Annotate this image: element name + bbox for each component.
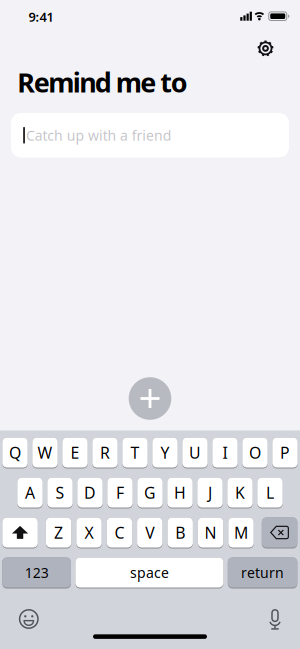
button[interactable]: Add reminder — [129, 377, 171, 420]
button[interactable]: K — [227, 477, 253, 508]
button[interactable]: S — [47, 477, 73, 508]
staticText: R — [100, 442, 110, 463]
button[interactable]: N — [198, 517, 223, 548]
staticText: U — [189, 442, 201, 463]
staticText: Z — [54, 522, 63, 543]
button[interactable]: X — [76, 517, 102, 548]
staticText: O — [249, 442, 261, 463]
button[interactable]: Dictation — [255, 601, 295, 637]
button[interactable]: T — [122, 437, 148, 468]
staticText: T — [130, 442, 139, 463]
staticText: 9:41 — [28, 8, 53, 25]
staticText: A — [25, 482, 35, 503]
button[interactable]: C — [107, 517, 132, 548]
button[interactable]: Settings — [252, 35, 278, 61]
staticText: Remind me to — [17, 64, 188, 100]
staticText: E — [70, 442, 79, 463]
button[interactable]: D — [77, 477, 103, 508]
button[interactable]: U — [182, 437, 208, 468]
button[interactable]: R — [92, 437, 118, 468]
button[interactable]: Delete — [262, 517, 297, 548]
button[interactable]: I — [212, 437, 238, 468]
staticText: J — [208, 482, 212, 503]
staticText: K — [235, 482, 245, 503]
staticText: Catch up with a friend — [26, 126, 172, 145]
button[interactable]: space — [75, 557, 223, 588]
staticText: D — [84, 482, 96, 503]
staticText: F — [116, 482, 124, 503]
button[interactable]: Emoji — [9, 601, 49, 637]
staticText: 123 — [25, 563, 49, 582]
button[interactable]: V — [137, 517, 162, 548]
button[interactable]: Q — [2, 437, 28, 468]
staticText: C — [114, 522, 124, 543]
button[interactable]: 123 — [2, 557, 71, 588]
button[interactable]: J — [197, 477, 223, 508]
button[interactable]: L — [257, 477, 283, 508]
button[interactable]: Reminder text field — [11, 113, 289, 157]
staticText: X — [84, 522, 93, 543]
button[interactable]: Shift — [2, 517, 38, 548]
staticText: space — [130, 563, 169, 582]
staticText: G — [144, 482, 156, 503]
staticText: Y — [160, 442, 169, 463]
button[interactable]: P — [272, 437, 298, 468]
staticText: return — [241, 563, 284, 582]
button[interactable]: W — [32, 437, 58, 468]
button[interactable]: H — [167, 477, 193, 508]
button[interactable]: F — [107, 477, 133, 508]
staticText: N — [205, 522, 217, 543]
button[interactable]: Z — [46, 517, 71, 548]
staticText: L — [266, 482, 274, 503]
button[interactable]: Y — [152, 437, 178, 468]
staticText: I — [222, 442, 227, 463]
staticText: W — [37, 442, 52, 463]
staticText: B — [175, 522, 185, 543]
staticText: P — [280, 442, 290, 463]
button[interactable]: B — [167, 517, 193, 548]
button[interactable]: E — [62, 437, 88, 468]
button[interactable]: G — [137, 477, 163, 508]
staticText: H — [174, 482, 186, 503]
staticText: Q — [9, 442, 21, 463]
staticText: M — [234, 522, 248, 543]
button[interactable]: O — [242, 437, 268, 468]
staticText: S — [55, 482, 64, 503]
button[interactable]: M — [228, 517, 254, 548]
button[interactable]: return — [228, 557, 297, 588]
button[interactable]: A — [17, 477, 43, 508]
staticText: V — [145, 522, 154, 543]
